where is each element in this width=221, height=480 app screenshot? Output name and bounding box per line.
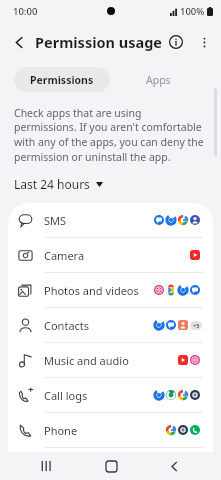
button[interactable]: SMS <box>8 203 213 237</box>
staticText: Phone <box>44 423 78 438</box>
staticText: Permission usage <box>35 32 162 52</box>
button[interactable]: Home <box>94 452 128 480</box>
button[interactable]: Nearby devices <box>8 448 213 480</box>
button[interactable]: Call logs <box>8 378 213 412</box>
button[interactable]: Contacts <box>8 308 213 342</box>
staticText: Apps <box>146 73 171 87</box>
staticText: Music and audio <box>44 353 129 368</box>
staticText: Contacts <box>44 318 90 333</box>
button[interactable]: Permissions <box>14 67 110 92</box>
button[interactable]: Back <box>157 452 191 480</box>
button[interactable]: Photos and videos <box>8 273 213 307</box>
button[interactable]: Last 24 hours <box>12 174 105 194</box>
button[interactable]: Back <box>4 27 34 57</box>
staticText: Call logs <box>44 388 88 403</box>
button[interactable]: More options <box>190 28 218 56</box>
button[interactable]: Music and audio <box>8 343 213 377</box>
button[interactable]: Information <box>162 28 190 56</box>
staticText: Photos and videos <box>44 283 139 298</box>
staticText: Check apps that are using permissions. I… <box>14 106 205 164</box>
staticText: Camera <box>44 248 85 263</box>
button[interactable]: Camera <box>8 238 213 272</box>
button[interactable]: Recent apps <box>30 452 64 480</box>
staticText: Last 24 hours <box>14 176 90 192</box>
staticText: 10:00 <box>13 5 38 18</box>
staticText: SMS <box>44 213 67 228</box>
staticText: Nearby devices <box>44 457 123 472</box>
staticText: +5 <box>193 322 200 329</box>
staticText: 100% <box>180 5 205 18</box>
button[interactable]: Phone <box>8 413 213 447</box>
button[interactable]: Apps <box>110 67 207 92</box>
staticText: Permissions <box>30 73 94 87</box>
